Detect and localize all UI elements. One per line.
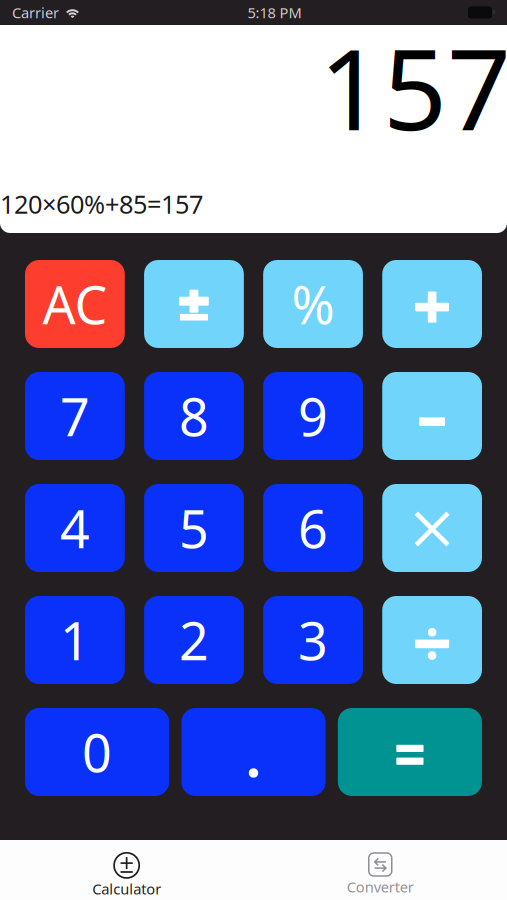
button[interactable]: 3 — [263, 596, 363, 684]
button[interactable] — [181, 708, 325, 796]
staticText: 4 — [60, 493, 90, 563]
button[interactable] — [382, 596, 482, 684]
staticText: 5 — [179, 493, 209, 563]
staticText: Converter — [347, 877, 414, 896]
button[interactable]: 1 — [25, 596, 125, 684]
staticText: 7 — [60, 381, 90, 451]
button[interactable]: Calculator — [0, 840, 253, 900]
button[interactable]: AC — [25, 260, 125, 348]
button[interactable]: 5 — [144, 484, 244, 572]
button[interactable] — [144, 260, 244, 348]
staticText: 120×60%+85=157 — [0, 187, 203, 221]
button[interactable] — [382, 260, 482, 348]
button[interactable]: 6 — [263, 484, 363, 572]
button[interactable]: 8 — [144, 372, 244, 460]
button[interactable] — [382, 372, 482, 460]
staticText: Carrier — [12, 3, 59, 22]
button[interactable] — [338, 708, 482, 796]
staticText: 157 — [319, 12, 507, 161]
button[interactable]: 4 — [25, 484, 125, 572]
button[interactable]: Converter — [253, 840, 507, 900]
staticText: 5:18 PM — [247, 3, 301, 22]
staticText: % — [291, 269, 334, 339]
staticText: AC — [42, 269, 107, 339]
button[interactable]: 2 — [144, 596, 244, 684]
button[interactable]: 0 — [25, 708, 169, 796]
staticText: Calculator — [92, 879, 161, 898]
staticText: 3 — [298, 605, 328, 675]
button[interactable]: 7 — [25, 372, 125, 460]
staticText: 6 — [298, 493, 328, 563]
button[interactable] — [382, 484, 482, 572]
button[interactable]: % — [263, 260, 363, 348]
staticText: 0 — [82, 717, 112, 787]
button[interactable]: 9 — [263, 372, 363, 460]
staticText: 1 — [60, 605, 90, 675]
staticText: 2 — [179, 605, 209, 675]
staticText: 9 — [298, 381, 328, 451]
staticText: 8 — [179, 381, 209, 451]
